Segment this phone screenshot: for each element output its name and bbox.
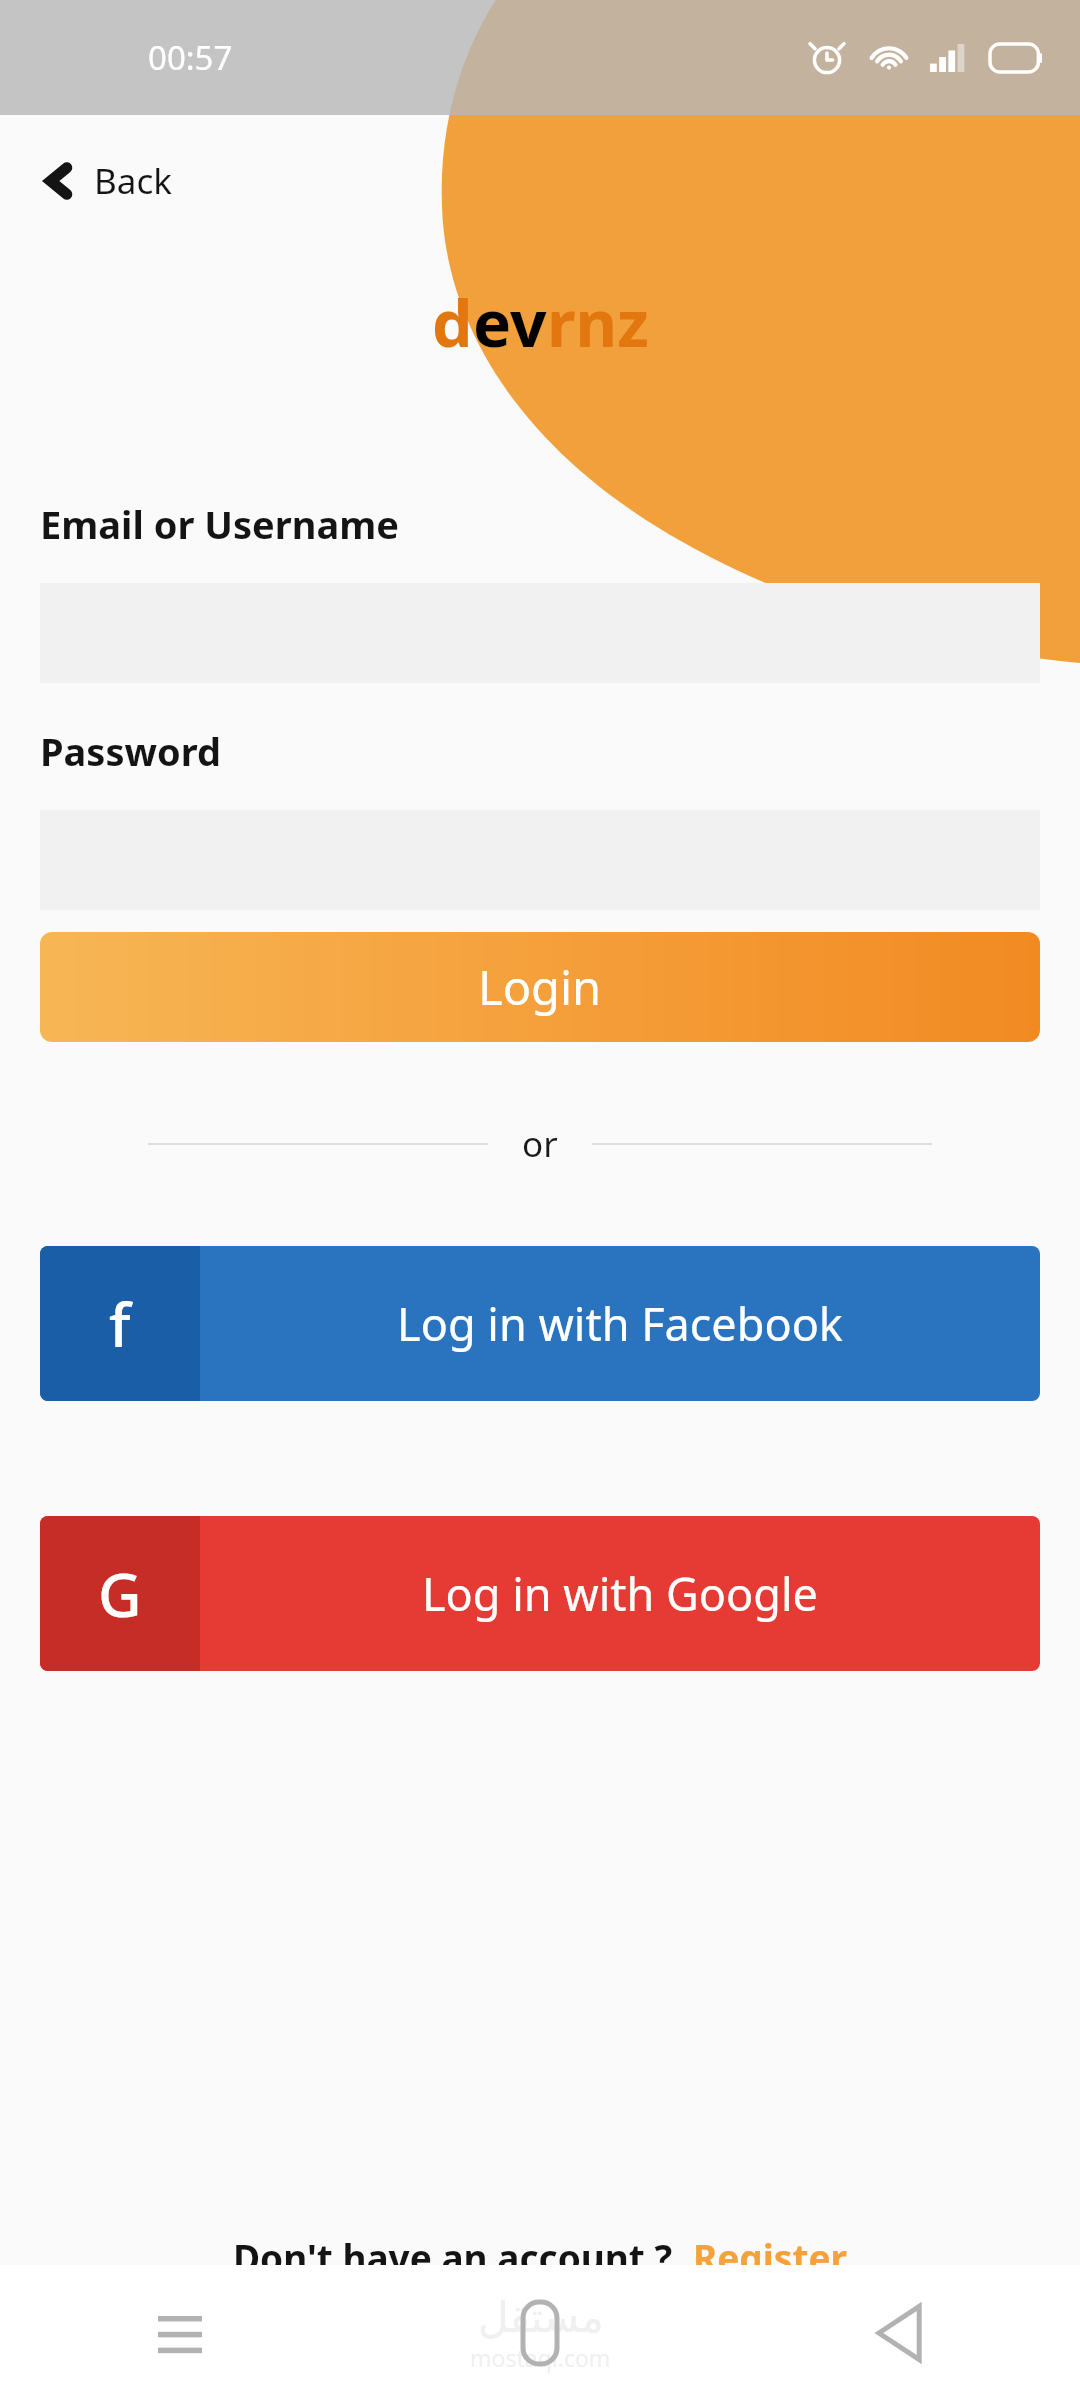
button[interactable]: Login — [40, 932, 1040, 1042]
staticText: 00:57 — [148, 35, 233, 80]
staticText: rnz — [547, 279, 649, 366]
button[interactable]: G — [40, 1516, 1040, 1671]
staticText: Log in with Facebook — [397, 1293, 843, 1354]
button[interactable]: Back — [854, 2287, 946, 2379]
staticText: Back — [94, 157, 172, 205]
button[interactable]: Back — [34, 145, 184, 217]
staticText: f — [109, 1283, 131, 1365]
staticText: Login — [478, 955, 602, 1019]
staticText: Don't have an account ? — [233, 2232, 673, 2282]
staticText: مستقل — [478, 2293, 604, 2342]
button[interactable]: Recent apps — [134, 2287, 226, 2379]
staticText: Password — [40, 725, 222, 777]
staticText: d — [432, 279, 473, 366]
staticText: Log in with Google — [422, 1563, 818, 1624]
button[interactable]: f — [40, 1246, 1040, 1401]
staticText: G — [98, 1553, 142, 1635]
button[interactable]: Home — [494, 2287, 586, 2379]
other: Back — [46, 166, 72, 196]
staticText: or — [522, 1120, 558, 1168]
staticText: Register — [693, 2232, 848, 2282]
button[interactable]: Register — [693, 2232, 848, 2282]
staticText: mostaql.com — [470, 2342, 611, 2373]
staticText: Email or Username — [40, 498, 399, 550]
staticText: ev — [473, 279, 547, 366]
